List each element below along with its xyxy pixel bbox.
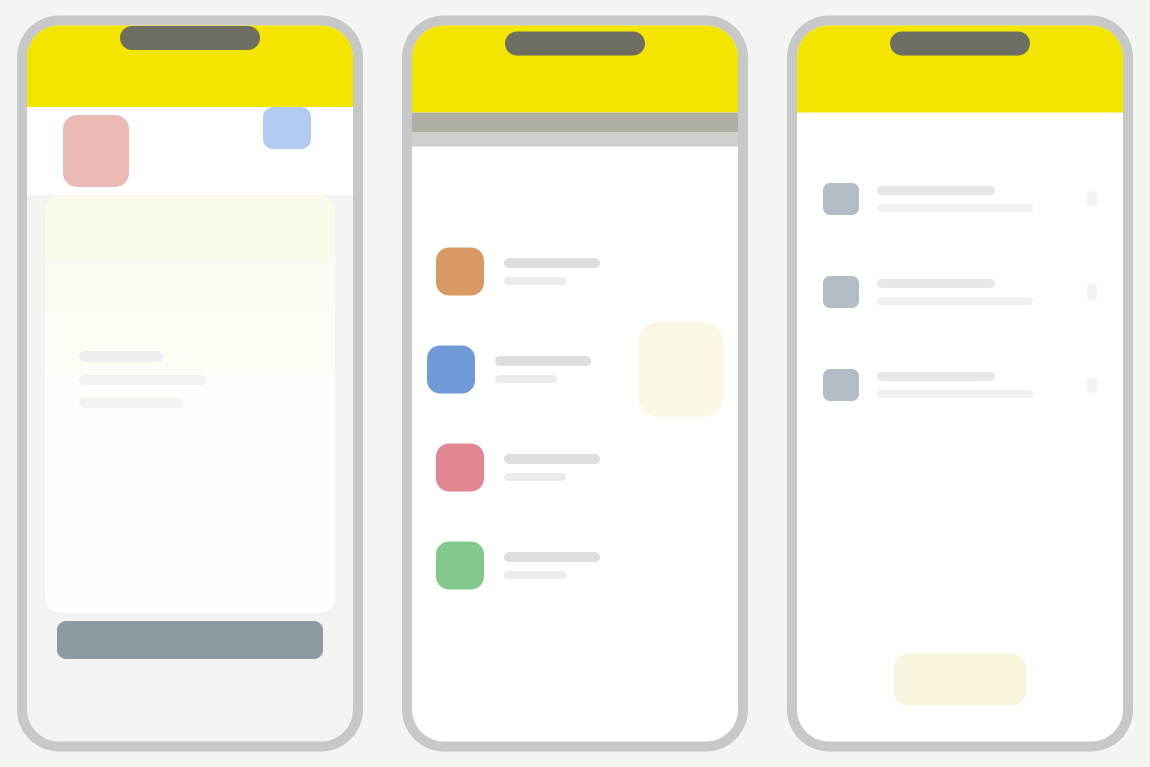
button[interactable]: [412, 320, 738, 418]
button[interactable]: Continue: [57, 621, 323, 659]
button[interactable]: [797, 245, 1123, 338]
button[interactable]: Send: [263, 107, 311, 149]
button[interactable]: [412, 418, 738, 516]
button[interactable]: [412, 516, 738, 614]
button[interactable]: [412, 222, 738, 320]
button[interactable]: [797, 152, 1123, 245]
button[interactable]: [797, 338, 1123, 431]
button[interactable]: Add: [894, 653, 1026, 705]
button[interactable]: Avatar: [63, 115, 129, 187]
